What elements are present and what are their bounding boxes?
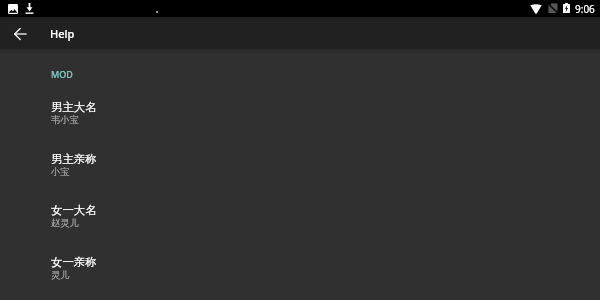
staticText: 小宝 xyxy=(51,166,70,178)
button[interactable]: Back xyxy=(0,18,40,49)
staticText: MOD xyxy=(51,68,73,80)
staticText: 韦小宝 xyxy=(51,114,79,126)
button[interactable]: 女一亲称 xyxy=(0,245,600,297)
staticText: 男主大名 xyxy=(51,100,97,114)
staticText: Help xyxy=(50,26,75,41)
button[interactable]: 女一大名 xyxy=(0,193,600,245)
staticText: 男主亲称 xyxy=(51,152,97,166)
button[interactable]: 男主亲称 xyxy=(0,142,600,194)
staticText: 女一大名 xyxy=(51,203,97,217)
staticText: 9:06 xyxy=(575,2,595,16)
staticText: 赵灵儿 xyxy=(51,217,79,229)
staticText: 灵儿 xyxy=(51,269,70,281)
button[interactable]: 男主大名 xyxy=(0,90,600,142)
staticText: 女一亲称 xyxy=(51,255,97,269)
